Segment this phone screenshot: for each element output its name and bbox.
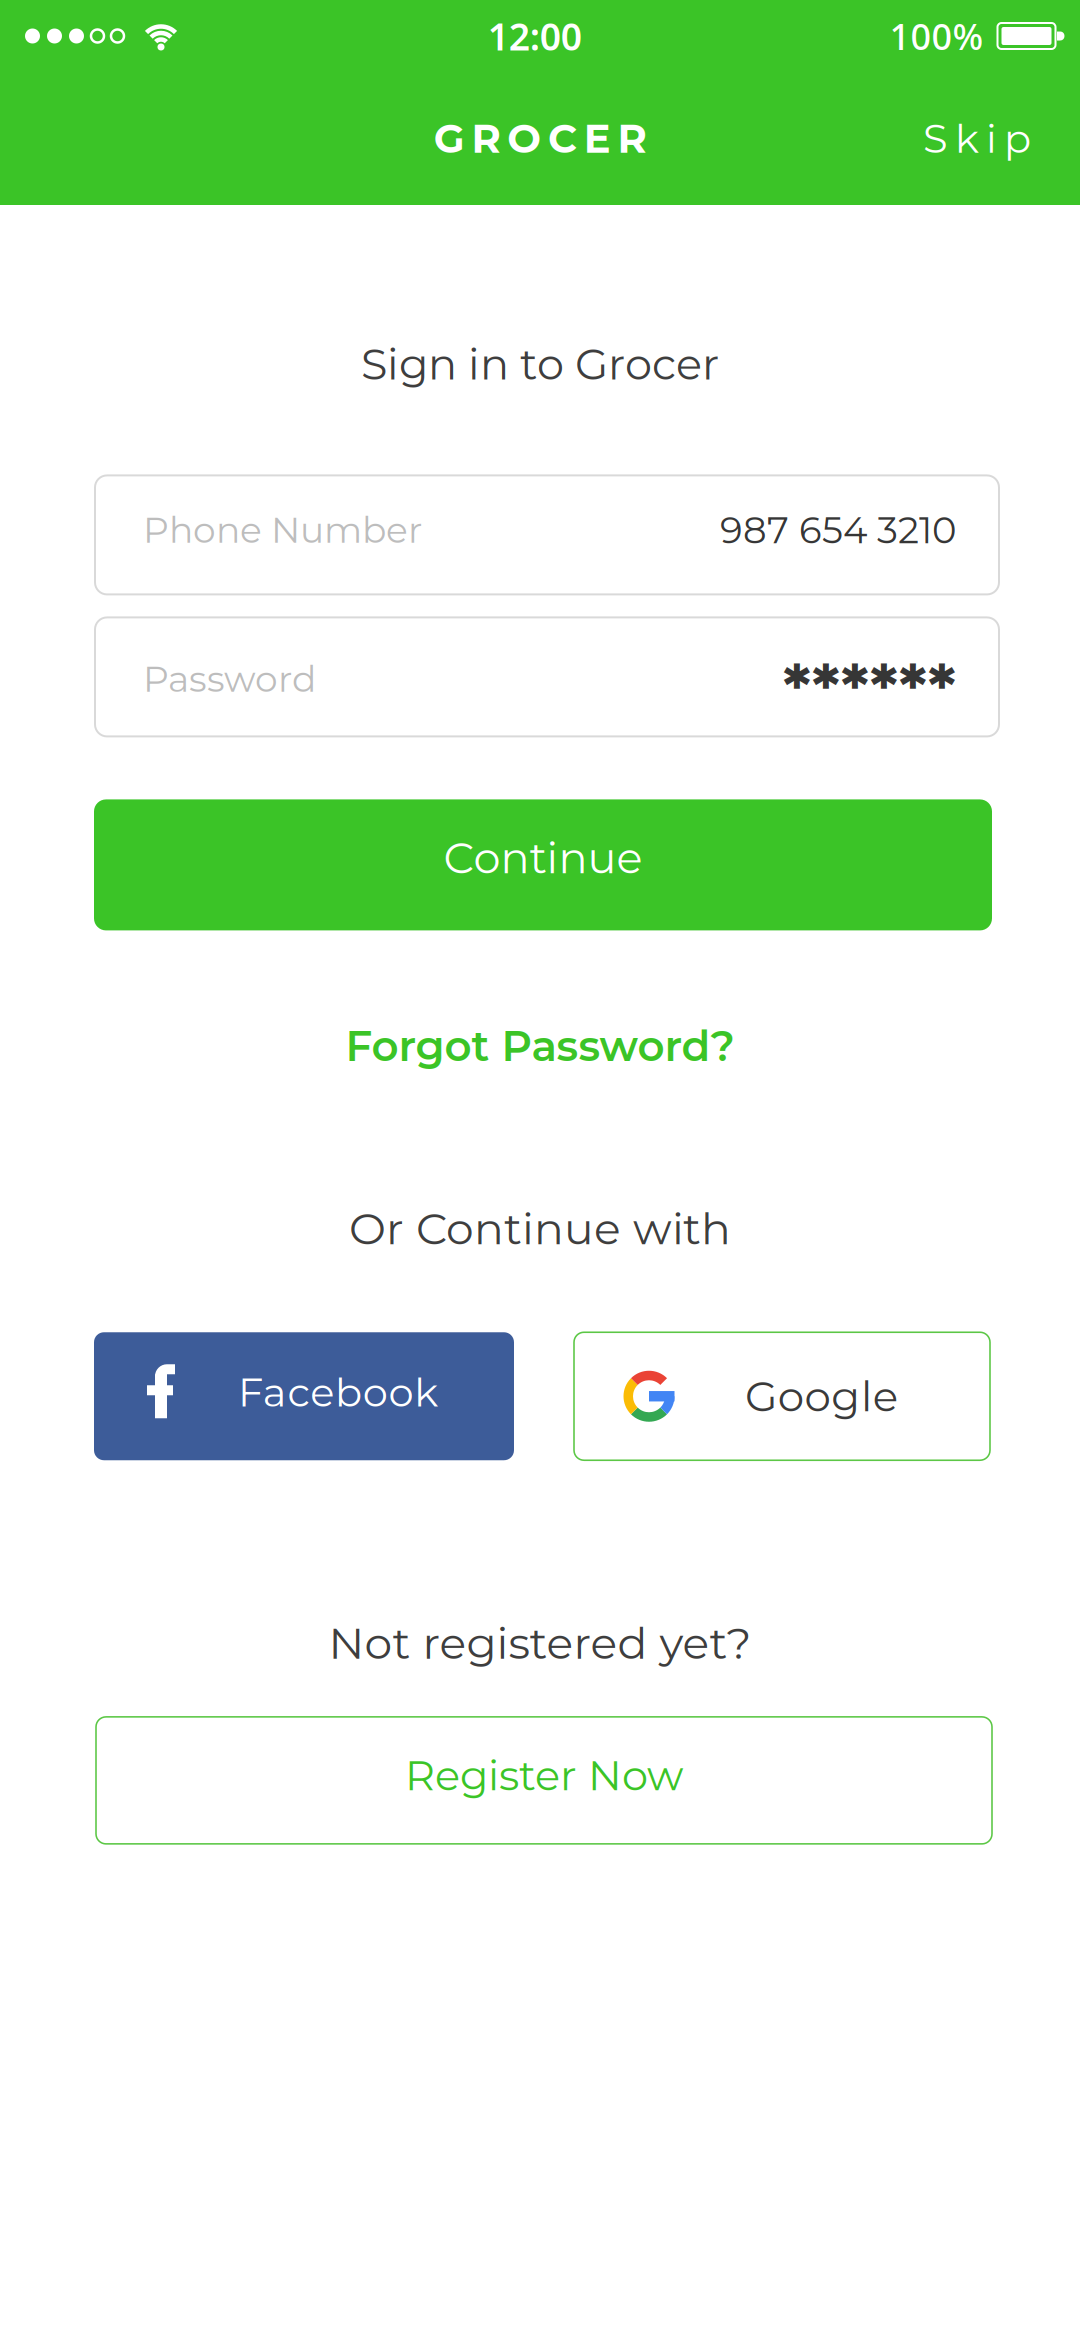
staticText: Forgot Password? bbox=[345, 1020, 734, 1072]
staticText: Continue bbox=[443, 832, 642, 884]
staticText: GROCER bbox=[434, 114, 646, 163]
button[interactable]: Password bbox=[95, 617, 999, 736]
staticText: Register Now bbox=[405, 1750, 683, 1801]
staticText: 987 654 3210 bbox=[720, 507, 956, 552]
staticText: Or Continue with bbox=[349, 1202, 731, 1255]
button[interactable]: Continue bbox=[94, 799, 992, 930]
button[interactable]: Phone Number bbox=[95, 475, 999, 594]
button[interactable]: Google bbox=[574, 1332, 990, 1460]
staticText: Google bbox=[745, 1371, 898, 1422]
staticText: Not registered yet? bbox=[328, 1616, 751, 1670]
staticText: Phone Number bbox=[143, 508, 422, 552]
staticText: Password bbox=[143, 657, 316, 701]
staticText: Facebook bbox=[238, 1368, 438, 1417]
staticText: 12:00 bbox=[488, 11, 582, 61]
button[interactable]: Forgot Password? bbox=[345, 1020, 734, 1072]
staticText: Skip bbox=[923, 114, 1031, 163]
button[interactable]: Skip bbox=[923, 114, 1031, 163]
staticText: ****** bbox=[783, 649, 956, 727]
button[interactable]: Register Now bbox=[96, 1717, 992, 1844]
button[interactable]: Facebook bbox=[94, 1332, 514, 1460]
staticText: 100% bbox=[889, 12, 983, 60]
staticText: Sign in to Grocer bbox=[361, 338, 719, 390]
